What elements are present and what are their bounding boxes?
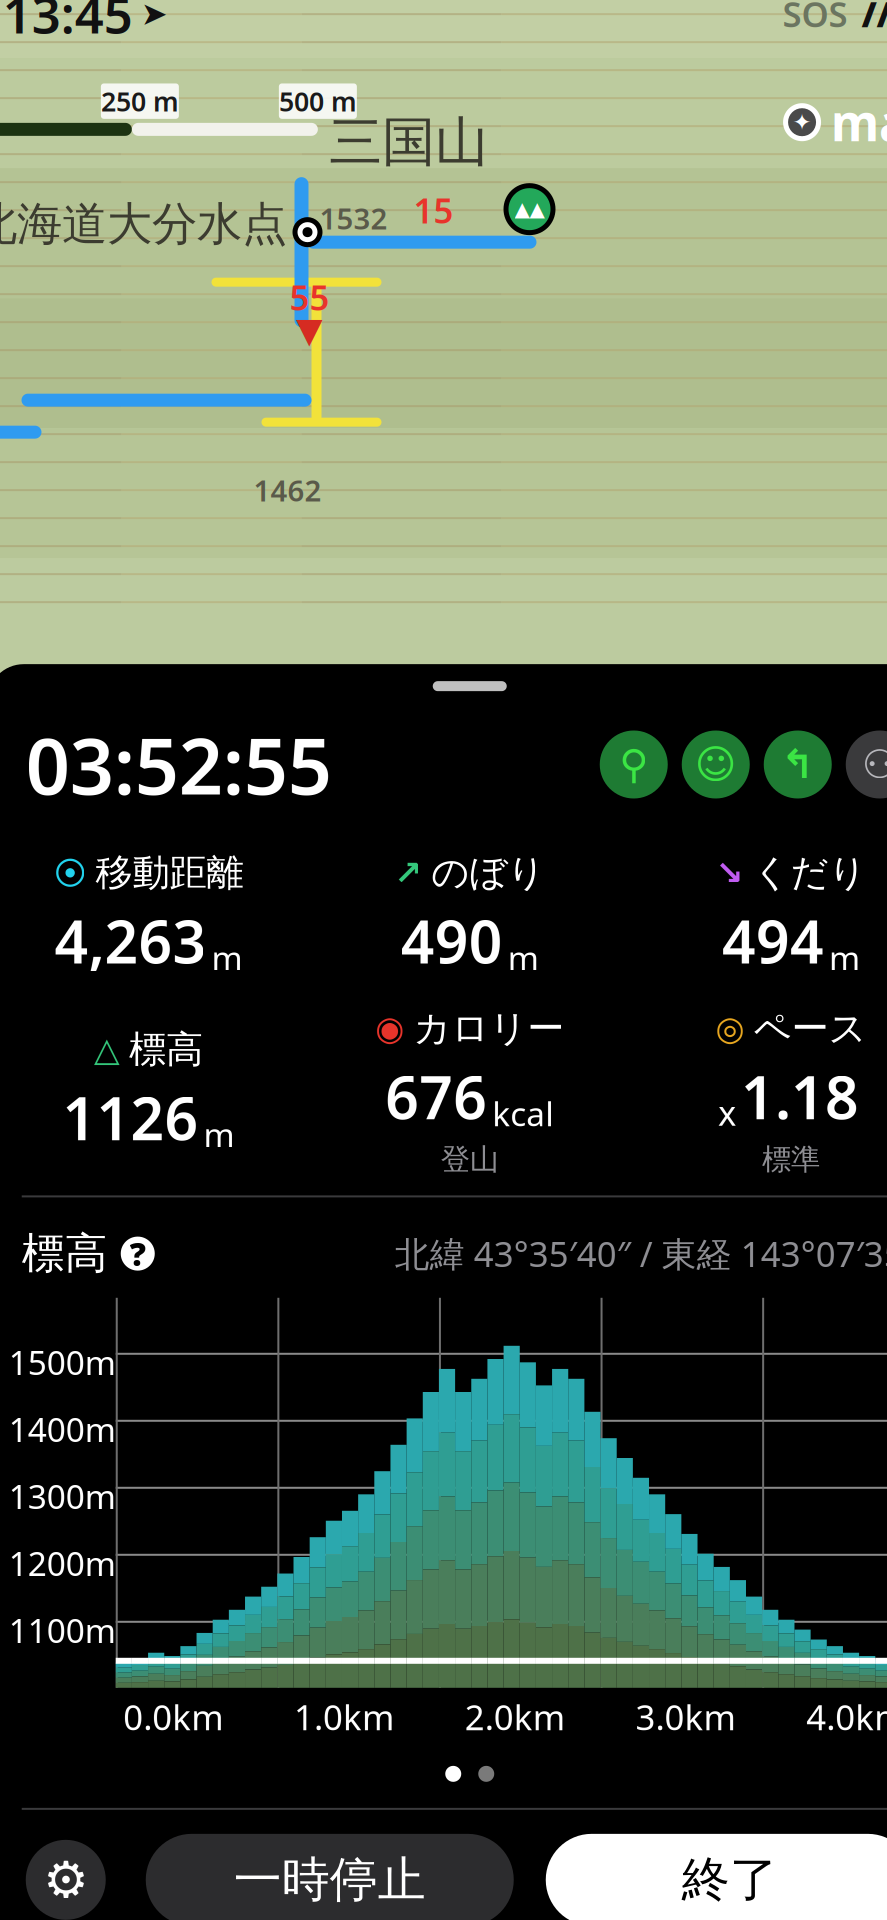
staticText: ▼: [296, 310, 323, 350]
staticText: 北海道大分水点: [0, 196, 287, 252]
button[interactable]: メンバー: [846, 730, 887, 798]
staticText: 登山: [441, 1141, 499, 1177]
staticText: 1532: [319, 199, 387, 238]
staticText: ↗: [394, 854, 422, 892]
staticText: ⚲: [619, 742, 648, 787]
staticText: ➤: [141, 0, 168, 32]
staticText: のぼり: [431, 850, 545, 896]
staticText: 標準: [762, 1141, 820, 1177]
staticText: ///: [861, 0, 887, 37]
staticText: 標高: [129, 1027, 203, 1072]
staticText: 1300m: [9, 1474, 116, 1518]
staticText: 1.0km: [294, 1694, 394, 1740]
staticText: SOS: [782, 0, 847, 37]
staticText: 15: [413, 187, 453, 233]
staticText: 676: [385, 1057, 487, 1135]
staticText: ◎: [716, 1010, 745, 1047]
staticText: 03:52:55: [26, 713, 332, 816]
staticText: m: [829, 935, 860, 980]
staticText: 0.0km: [123, 1694, 223, 1740]
staticText: 2.0km: [465, 1694, 565, 1740]
staticText: 4,263: [54, 902, 206, 980]
staticText: 250 m: [101, 83, 179, 119]
staticText: ▲▲: [514, 198, 544, 220]
staticText: 3.0km: [636, 1694, 736, 1740]
staticText: ✦: [793, 109, 812, 135]
button[interactable]: 標高グラフの説明: [108, 1232, 155, 1275]
staticText: m: [508, 935, 539, 980]
staticText: 標高: [22, 1227, 108, 1280]
staticText: ↘: [716, 854, 744, 892]
staticText: 一時停止: [234, 1850, 426, 1909]
staticText: 1200m: [9, 1541, 116, 1585]
staticText: 1462: [253, 471, 321, 510]
staticText: ⚙: [43, 1851, 88, 1909]
staticText: カロリー: [413, 1006, 564, 1051]
staticText: くだり: [753, 850, 867, 896]
staticText: ⦿: [53, 856, 86, 889]
button[interactable]: 設定: [26, 1840, 106, 1920]
staticText: ↰: [781, 742, 815, 787]
staticText: 490: [401, 902, 503, 980]
button[interactable]: 投稿: [682, 730, 750, 798]
staticText: 55: [289, 274, 329, 320]
staticText: 終了: [682, 1850, 778, 1909]
button[interactable]: 終了: [546, 1834, 887, 1920]
staticText: ⚇: [862, 742, 887, 787]
staticText: m: [203, 1112, 234, 1156]
staticText: 1500m: [9, 1340, 116, 1384]
staticText: 北緯 43°35′40″ / 東経 143°07′35″: [395, 1231, 887, 1277]
staticText: 1.18: [741, 1057, 859, 1135]
staticText: mapbox: [831, 89, 887, 155]
staticText: 移動距離: [95, 850, 243, 896]
staticText: ペース: [754, 1006, 867, 1051]
staticText: kcal: [492, 1091, 554, 1135]
staticText: 三国山: [329, 109, 488, 175]
button[interactable]: ルート: [764, 730, 832, 798]
staticText: x: [718, 1089, 736, 1135]
staticText: △: [94, 1031, 120, 1068]
staticText: 1126: [62, 1078, 198, 1156]
button[interactable]: 計測設定: [600, 730, 668, 798]
staticText: 1400m: [9, 1407, 116, 1451]
staticText: 4.0km: [806, 1694, 887, 1740]
staticText: 13:45: [3, 0, 133, 47]
staticText: ☺: [695, 742, 737, 787]
staticText: ?: [130, 1232, 146, 1275]
staticText: 1100m: [9, 1608, 116, 1652]
staticText: 500 m: [279, 83, 357, 119]
staticText: ◉: [375, 1010, 404, 1047]
staticText: 494: [722, 902, 824, 980]
button[interactable]: 一時停止: [146, 1834, 514, 1920]
staticText: m: [211, 935, 242, 980]
